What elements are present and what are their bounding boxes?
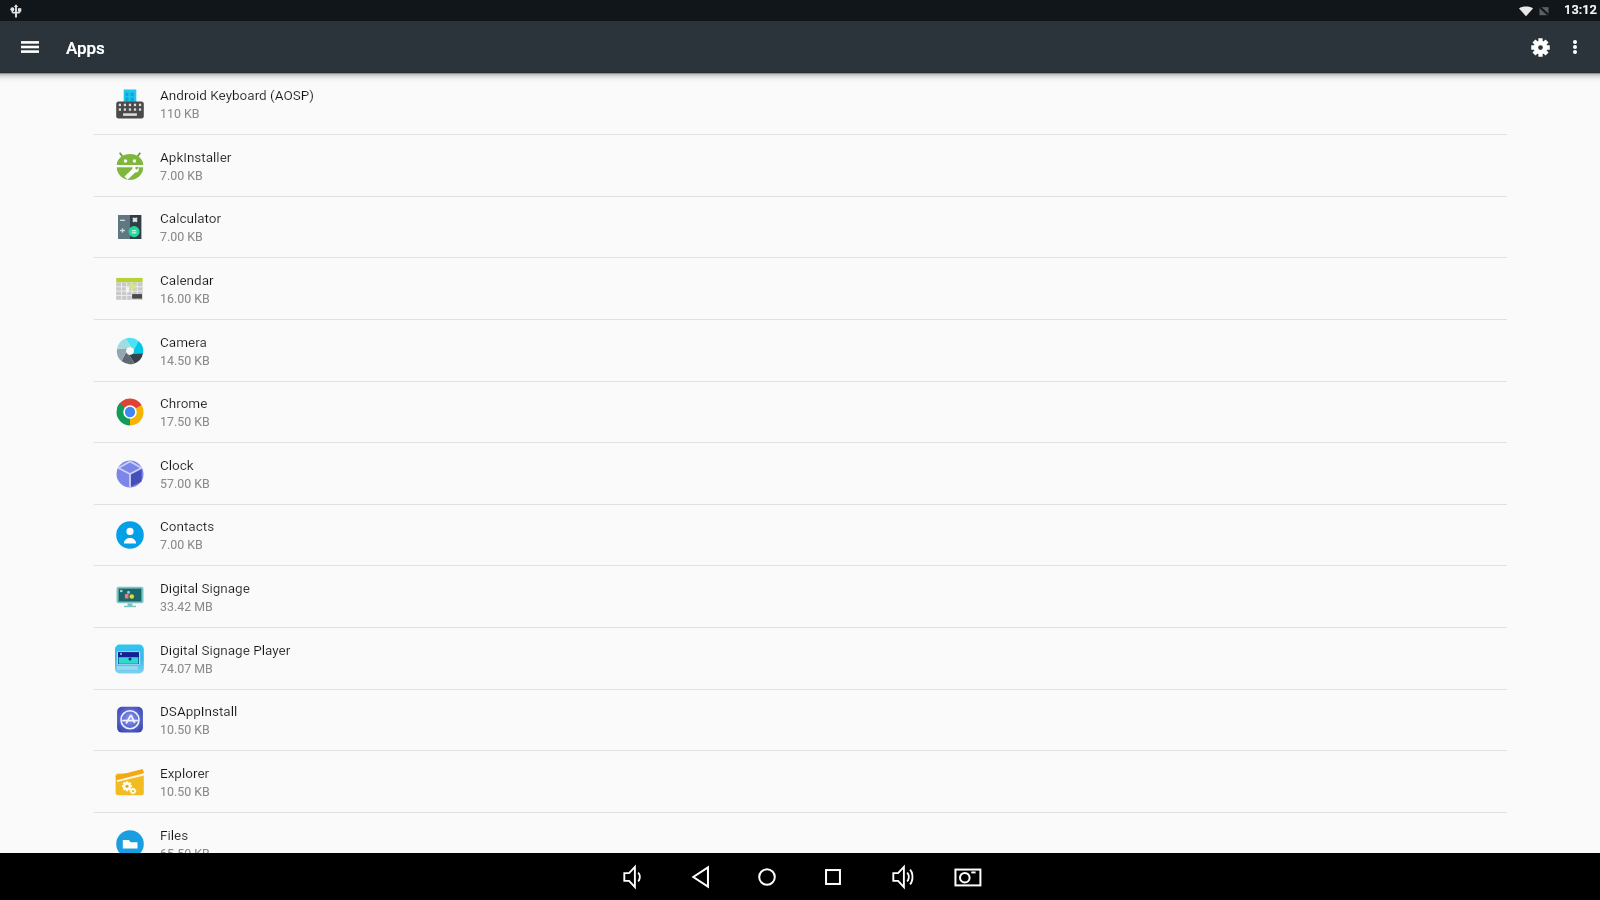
staticText: Calculator (160, 210, 222, 226)
button[interactable]: Camera (0, 320, 1600, 382)
staticText: 7.00 KB (160, 168, 203, 183)
staticText: 57.00 KB (160, 476, 210, 491)
staticText: ApkInstaller (160, 149, 232, 165)
staticText: DSAppInstall (160, 703, 238, 719)
staticText: Chrome (160, 395, 208, 411)
staticText: 110 KB (160, 106, 200, 121)
staticText: Contacts (160, 518, 215, 534)
button[interactable]: Open navigation drawer (8, 25, 52, 69)
staticText: Digital Signage (160, 580, 250, 596)
staticText: Digital Signage Player (160, 642, 291, 658)
staticText: 74.07 MB (160, 661, 213, 676)
button[interactable]: Digital Signage (0, 566, 1600, 628)
staticText: 13:12 (1564, 2, 1598, 17)
button[interactable]: Android Keyboard (AOSP) (0, 73, 1600, 135)
button[interactable]: Clock (0, 443, 1600, 505)
staticText: 14.50 KB (160, 353, 210, 368)
button[interactable]: Calendar (0, 258, 1600, 320)
staticText: Clock (160, 457, 194, 473)
button[interactable]: DSAppInstall (0, 689, 1600, 751)
button[interactable]: Settings (1518, 25, 1562, 69)
button[interactable]: Recents (815, 859, 851, 895)
button[interactable]: ApkInstaller (0, 135, 1600, 197)
staticText: 16.00 KB (160, 291, 210, 306)
button[interactable]: More options (1555, 27, 1595, 67)
staticText: 7.00 KB (160, 537, 203, 552)
staticText: 33.42 MB (160, 599, 213, 614)
staticText: Apps (66, 38, 105, 58)
button[interactable]: Home (749, 859, 785, 895)
button[interactable]: Contacts (0, 504, 1600, 566)
button[interactable]: Volume down (614, 859, 650, 895)
staticText: Android Keyboard (AOSP) (160, 87, 314, 103)
button[interactable]: Screenshot (948, 859, 984, 895)
button[interactable]: Files (0, 813, 1600, 875)
staticText: 65.50 KB (160, 846, 210, 861)
staticText: 17.50 KB (160, 414, 210, 429)
button[interactable]: Calculator (0, 196, 1600, 258)
staticText: Files (160, 827, 189, 843)
staticText: Camera (160, 334, 207, 350)
staticText: 7.00 KB (160, 229, 203, 244)
button[interactable]: Volume up (883, 859, 919, 895)
button[interactable]: Chrome (0, 381, 1600, 443)
staticText: 10.50 KB (160, 722, 210, 737)
staticText: Calendar (160, 272, 214, 288)
button[interactable]: Explorer (0, 751, 1600, 813)
button[interactable]: Back (683, 859, 719, 895)
staticText: Explorer (160, 765, 210, 781)
staticText: 10.50 KB (160, 784, 210, 799)
button[interactable]: Digital Signage Player (0, 628, 1600, 690)
